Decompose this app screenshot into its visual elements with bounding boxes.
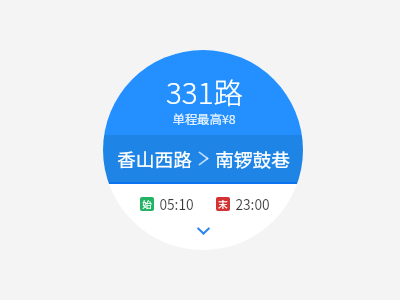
button[interactable]: 香山西路 xyxy=(103,135,303,182)
staticText: 单程最高¥8 xyxy=(172,110,236,128)
staticText: 23:00 xyxy=(235,194,270,214)
staticText: 南锣鼓巷 xyxy=(215,145,290,172)
staticText: 05:10 xyxy=(159,194,194,214)
staticText: 香山西路 xyxy=(117,145,192,172)
staticText: 末 xyxy=(218,197,228,211)
staticText: 始 xyxy=(142,197,152,211)
button[interactable]: Expand details xyxy=(188,222,218,240)
staticText: 331路 xyxy=(166,70,243,113)
